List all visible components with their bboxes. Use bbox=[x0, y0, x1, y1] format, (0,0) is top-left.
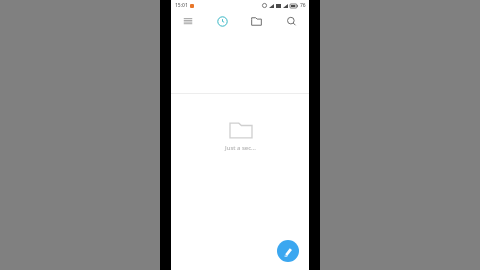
button[interactable]: Recent bbox=[205, 11, 239, 31]
button[interactable]: Search bbox=[274, 11, 309, 31]
staticText: Just a sec... bbox=[225, 144, 256, 152]
button[interactable]: Compose bbox=[277, 240, 299, 262]
staticText: 76 bbox=[300, 2, 306, 9]
button[interactable]: Menu bbox=[171, 11, 205, 31]
staticText: 15:01 bbox=[175, 2, 188, 9]
button[interactable]: Folders bbox=[239, 11, 274, 31]
